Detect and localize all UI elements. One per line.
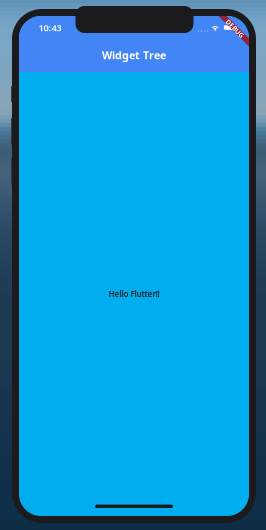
staticText: DEBUG <box>223 24 246 33</box>
staticText: Hello Flutter!! <box>108 289 159 299</box>
staticText: 10:43 <box>38 21 61 34</box>
staticText: Widget Tree <box>102 48 166 62</box>
